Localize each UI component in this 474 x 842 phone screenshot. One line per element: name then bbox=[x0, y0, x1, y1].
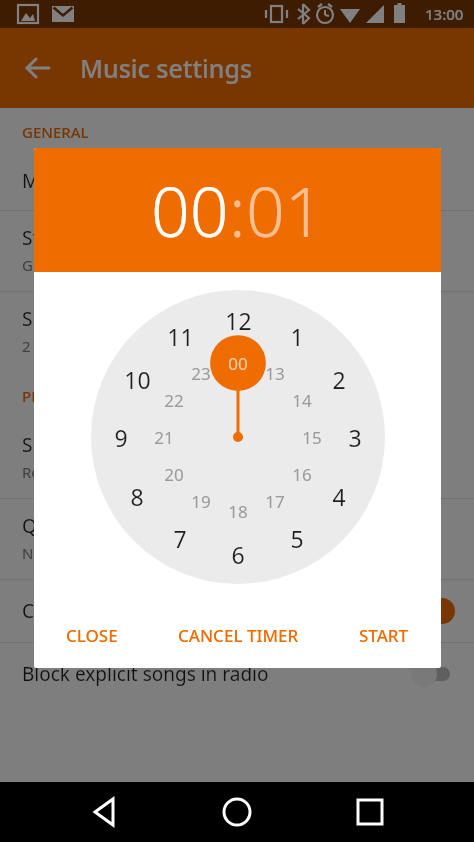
staticText: 17 bbox=[265, 490, 285, 513]
staticText: 2 bbox=[332, 364, 346, 395]
button[interactable]: Music quality bbox=[0, 154, 474, 210]
staticText: GENERAL bbox=[22, 122, 89, 142]
staticText: 00 bbox=[151, 164, 229, 257]
staticText: 00 bbox=[228, 352, 248, 375]
button[interactable]: Home bbox=[209, 784, 265, 840]
staticText: 20 bbox=[164, 463, 184, 486]
staticText: 15 bbox=[302, 426, 322, 449]
staticText: PLAYBACK bbox=[22, 386, 96, 406]
button[interactable]: Skip silence bbox=[0, 292, 474, 372]
staticText: : bbox=[229, 164, 246, 257]
staticText: 11 bbox=[167, 321, 194, 352]
button[interactable]: Sleep timer bbox=[0, 418, 474, 498]
staticText: CLOSE bbox=[66, 624, 118, 647]
button[interactable]: CANCEL TIMER bbox=[170, 616, 307, 655]
staticText: 18 bbox=[228, 500, 248, 523]
staticText: 2 seconds bbox=[22, 336, 93, 356]
button[interactable]: Recents bbox=[342, 784, 398, 840]
staticText: 16 bbox=[292, 463, 312, 486]
staticText: 3 bbox=[348, 422, 362, 453]
staticText: 12 bbox=[225, 305, 252, 336]
staticText: 10 bbox=[124, 364, 151, 395]
staticText: Music settings bbox=[80, 51, 253, 85]
staticText: Music quality bbox=[22, 168, 140, 194]
staticText: Reminds you to stop bbox=[22, 462, 167, 482]
staticText: 13 bbox=[265, 362, 285, 385]
staticText: 14 bbox=[292, 389, 312, 412]
staticText: 23 bbox=[191, 362, 211, 385]
button[interactable]: CLOSE bbox=[58, 616, 126, 655]
button[interactable]: Queue behaviour bbox=[0, 499, 474, 579]
staticText: 5 bbox=[290, 523, 304, 554]
staticText: 4 bbox=[332, 481, 346, 512]
staticText: Skip silence bbox=[22, 306, 126, 332]
staticText: 9 bbox=[114, 422, 128, 453]
button[interactable]: Back bbox=[77, 784, 133, 840]
staticText: General storage bbox=[22, 255, 135, 275]
staticText: Block explicit songs in radio bbox=[22, 661, 408, 687]
button[interactable]: START bbox=[351, 616, 417, 655]
button[interactable]: Block explicit songs in radio bbox=[0, 643, 474, 705]
staticText: 13:00 bbox=[425, 4, 464, 24]
staticText: Queue behaviour bbox=[22, 513, 178, 539]
staticText: Cache music while streaming bbox=[22, 598, 408, 624]
staticText: Sleep timer bbox=[22, 432, 124, 458]
staticText: CANCEL TIMER bbox=[178, 624, 299, 647]
staticText: 1 bbox=[290, 321, 304, 352]
staticText: 8 bbox=[130, 481, 144, 512]
button[interactable]: Storage location bbox=[0, 211, 474, 291]
staticText: 7 bbox=[173, 523, 187, 554]
staticText: Normal bbox=[22, 543, 75, 563]
staticText: START bbox=[359, 624, 409, 647]
staticText: 6 bbox=[231, 539, 245, 570]
button[interactable]: Cache music while streaming bbox=[0, 580, 474, 642]
staticText: 19 bbox=[191, 490, 211, 513]
staticText: 01 bbox=[246, 164, 324, 257]
staticText: Storage location bbox=[22, 225, 168, 251]
staticText: 21 bbox=[154, 426, 174, 449]
staticText: 22 bbox=[164, 389, 184, 412]
button[interactable]: Back bbox=[14, 44, 62, 92]
